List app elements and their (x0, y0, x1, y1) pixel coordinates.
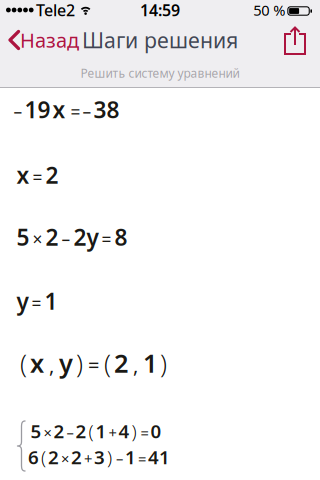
staticText: Шаги решения (82, 26, 238, 54)
staticText: Назад (20, 27, 79, 53)
button[interactable]: Назад (0, 27, 79, 53)
staticText: y = 1 (16, 286, 57, 316)
button[interactable]: Share (282, 25, 320, 55)
staticText: ( x , y ) = ( 2 , 1 ) (20, 346, 167, 380)
staticText: Tele2 (36, 0, 75, 21)
staticText: 50 % (253, 0, 285, 20)
staticText: x = 2 (16, 160, 58, 190)
staticText: 5 × 2 – 2 ( 1 + 4 ) = 0 (30, 418, 161, 443)
staticText: Решить систему уравнений (80, 65, 239, 81)
staticText: – 19 x = – 38 (13, 94, 119, 125)
staticText: 6 ( 2 × 2 + 3 ) – 1 = 41 (28, 444, 170, 469)
staticText: 14:59 (140, 0, 180, 21)
staticText: 5 × 2 – 2y = 8 (16, 222, 127, 252)
